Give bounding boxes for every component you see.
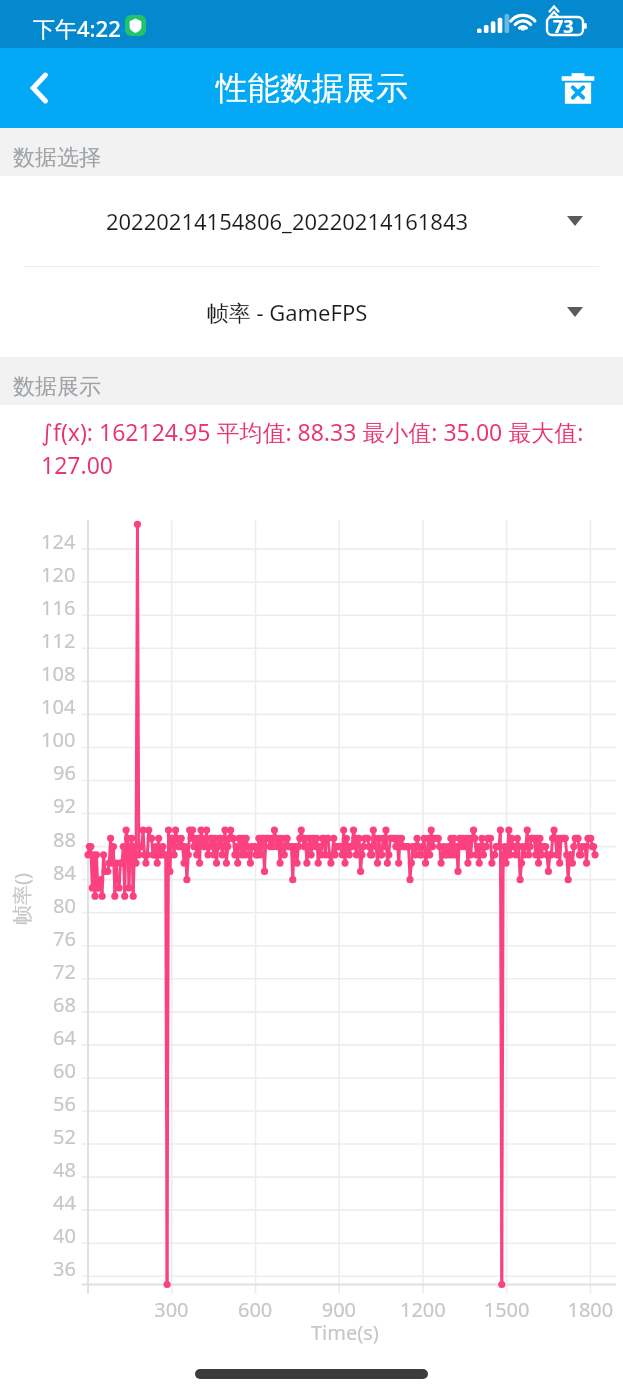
staticText: 73: [553, 14, 574, 39]
button[interactable]: 20220214154806_20220214161843: [0, 176, 623, 266]
staticText: 帧率 - GameFPS: [0, 297, 574, 327]
staticText: 20220214154806_20220214161843: [0, 206, 574, 236]
staticText: 数据选择: [13, 144, 101, 172]
button[interactable]: Delete: [543, 48, 613, 128]
staticText: ∫f(x): 162124.95 平均值: 88.33 最小值: 35.00 最…: [41, 416, 609, 481]
button[interactable]: Back: [0, 48, 80, 128]
staticText: 数据展示: [13, 373, 101, 401]
button[interactable]: 帧率 - GameFPS: [0, 267, 623, 357]
staticText: 下午4:22: [33, 13, 121, 43]
staticText: 性能数据展示: [216, 68, 408, 108]
